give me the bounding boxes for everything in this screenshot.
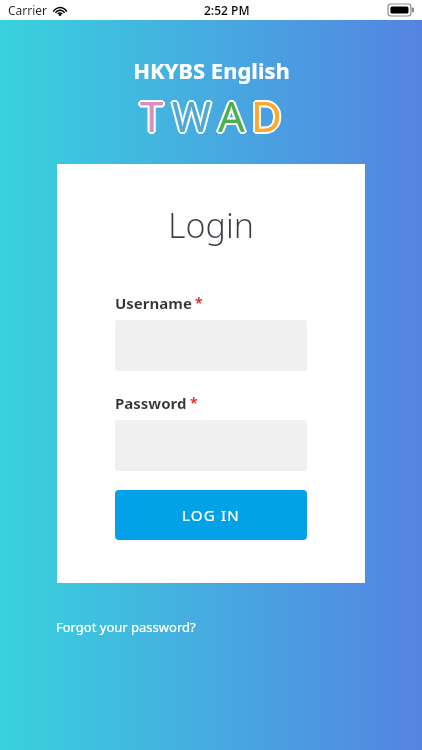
staticText: W: [172, 87, 212, 144]
staticText: Carrier: [8, 2, 48, 18]
staticText: T: [141, 86, 165, 143]
staticText: W: [172, 89, 212, 146]
staticText: LOG IN: [182, 505, 240, 525]
button[interactable]: Forgot your password?: [56, 615, 196, 639]
staticText: D: [250, 86, 281, 143]
staticText: *: [190, 393, 198, 412]
staticText: D: [251, 85, 282, 142]
staticText: A: [217, 86, 244, 143]
staticText: D: [249, 87, 280, 144]
staticText: *: [195, 293, 203, 312]
staticText: T: [140, 87, 164, 144]
staticText: D: [253, 87, 284, 144]
staticText: W: [172, 85, 212, 142]
staticText: D: [252, 86, 283, 143]
staticText: D: [251, 89, 282, 146]
staticText: A: [220, 87, 247, 144]
staticText: W: [173, 88, 213, 145]
staticText: A: [219, 88, 246, 145]
staticText: A: [218, 85, 245, 142]
staticText: T: [141, 88, 165, 145]
staticText: HKYBS English: [133, 55, 290, 85]
staticText: A: [219, 86, 246, 143]
staticText: T: [140, 89, 164, 146]
staticText: D: [250, 88, 281, 145]
button[interactable]: LOG IN: [115, 490, 307, 540]
staticText: W: [174, 87, 214, 144]
staticText: Forgot your password?: [56, 618, 196, 636]
staticText: A: [216, 87, 243, 144]
staticText: T: [140, 85, 164, 142]
staticText: 2:52 PM: [204, 2, 250, 18]
staticText: W: [171, 86, 211, 143]
staticText: W: [171, 88, 211, 145]
staticText: A: [217, 88, 244, 145]
staticText: D: [251, 87, 282, 144]
staticText: W: [170, 87, 210, 144]
staticText: T: [139, 86, 163, 143]
staticText: W: [173, 86, 213, 143]
staticText: Username: [115, 293, 192, 313]
staticText: Login: [168, 202, 255, 248]
staticText: A: [218, 89, 245, 146]
staticText: T: [142, 87, 166, 144]
staticText: T: [139, 88, 163, 145]
staticText: T: [138, 87, 162, 144]
staticText: A: [218, 87, 245, 144]
staticText: Password: [115, 393, 187, 413]
staticText: D: [252, 88, 283, 145]
